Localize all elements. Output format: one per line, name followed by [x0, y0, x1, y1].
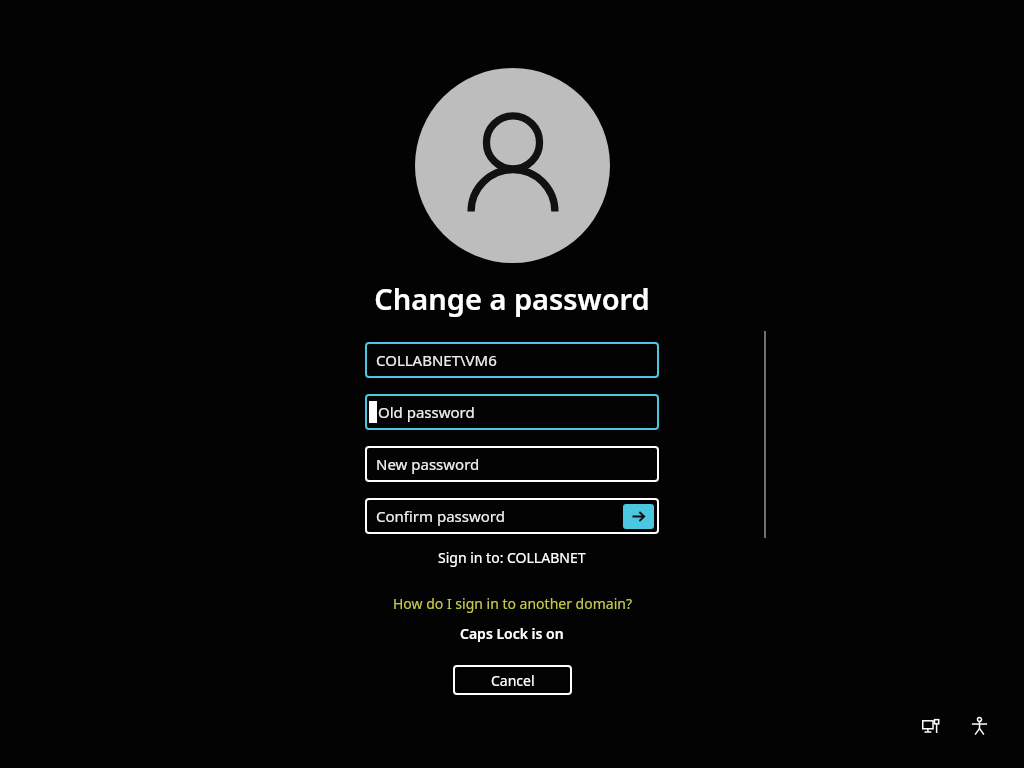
staticText: Cancel: [491, 671, 535, 690]
button[interactable]: How do I sign in to another domain?: [389, 592, 636, 615]
staticText: New password: [376, 454, 480, 474]
button[interactable]: COLLABNET\VM6: [365, 342, 659, 378]
button[interactable]: Submit: [623, 504, 654, 529]
staticText: Confirm password: [376, 506, 505, 526]
staticText: Old password: [378, 402, 475, 422]
button[interactable]: Network: [914, 709, 948, 743]
staticText: COLLABNET\VM6: [376, 350, 497, 370]
staticText: Sign in to: COLLABNET: [438, 548, 586, 567]
button[interactable]: New password: [365, 446, 659, 482]
button[interactable]: Accessibility: [962, 709, 996, 743]
staticText: Caps Lock is on: [460, 624, 564, 643]
staticText: How do I sign in to another domain?: [393, 594, 632, 613]
button[interactable]: Old password: [365, 394, 659, 430]
staticText: Change a password: [374, 279, 650, 318]
button[interactable]: Cancel: [453, 665, 572, 695]
button[interactable]: Confirm password: [365, 498, 659, 534]
